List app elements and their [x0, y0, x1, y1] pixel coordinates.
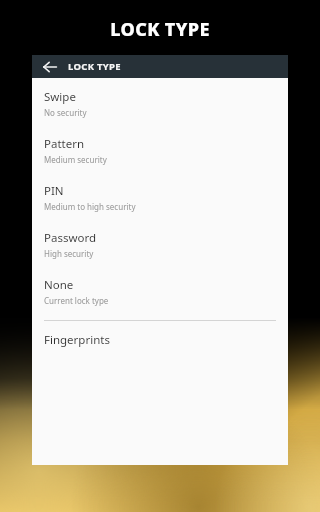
button[interactable]: PIN: [32, 178, 288, 217]
button[interactable]: Back: [38, 55, 62, 78]
button[interactable]: Fingerprints: [32, 327, 288, 353]
staticText: Medium security: [44, 154, 107, 165]
button[interactable]: Swipe: [32, 84, 288, 123]
staticText: Password: [44, 230, 97, 246]
staticText: Swipe: [44, 89, 76, 105]
staticText: High security: [44, 248, 94, 259]
staticText: LOCK TYPE: [68, 60, 121, 73]
staticText: No security: [44, 107, 87, 118]
button[interactable]: Pattern: [32, 131, 288, 170]
staticText: Medium to high security: [44, 201, 136, 212]
staticText: Fingerprints: [44, 332, 110, 348]
staticText: None: [44, 277, 74, 293]
staticText: Current lock type: [44, 295, 109, 306]
button[interactable]: Password: [32, 225, 288, 264]
staticText: Pattern: [44, 136, 85, 152]
button[interactable]: None: [32, 272, 288, 311]
staticText: PIN: [44, 183, 64, 199]
staticText: LOCK TYPE: [110, 17, 210, 42]
